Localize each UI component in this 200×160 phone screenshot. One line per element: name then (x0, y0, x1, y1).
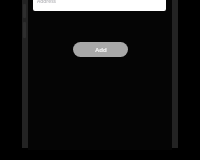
staticText: Add (95, 46, 107, 54)
staticText: Address (37, 0, 56, 5)
button[interactable]: Address (33, 0, 166, 11)
button[interactable]: Add (73, 42, 128, 57)
